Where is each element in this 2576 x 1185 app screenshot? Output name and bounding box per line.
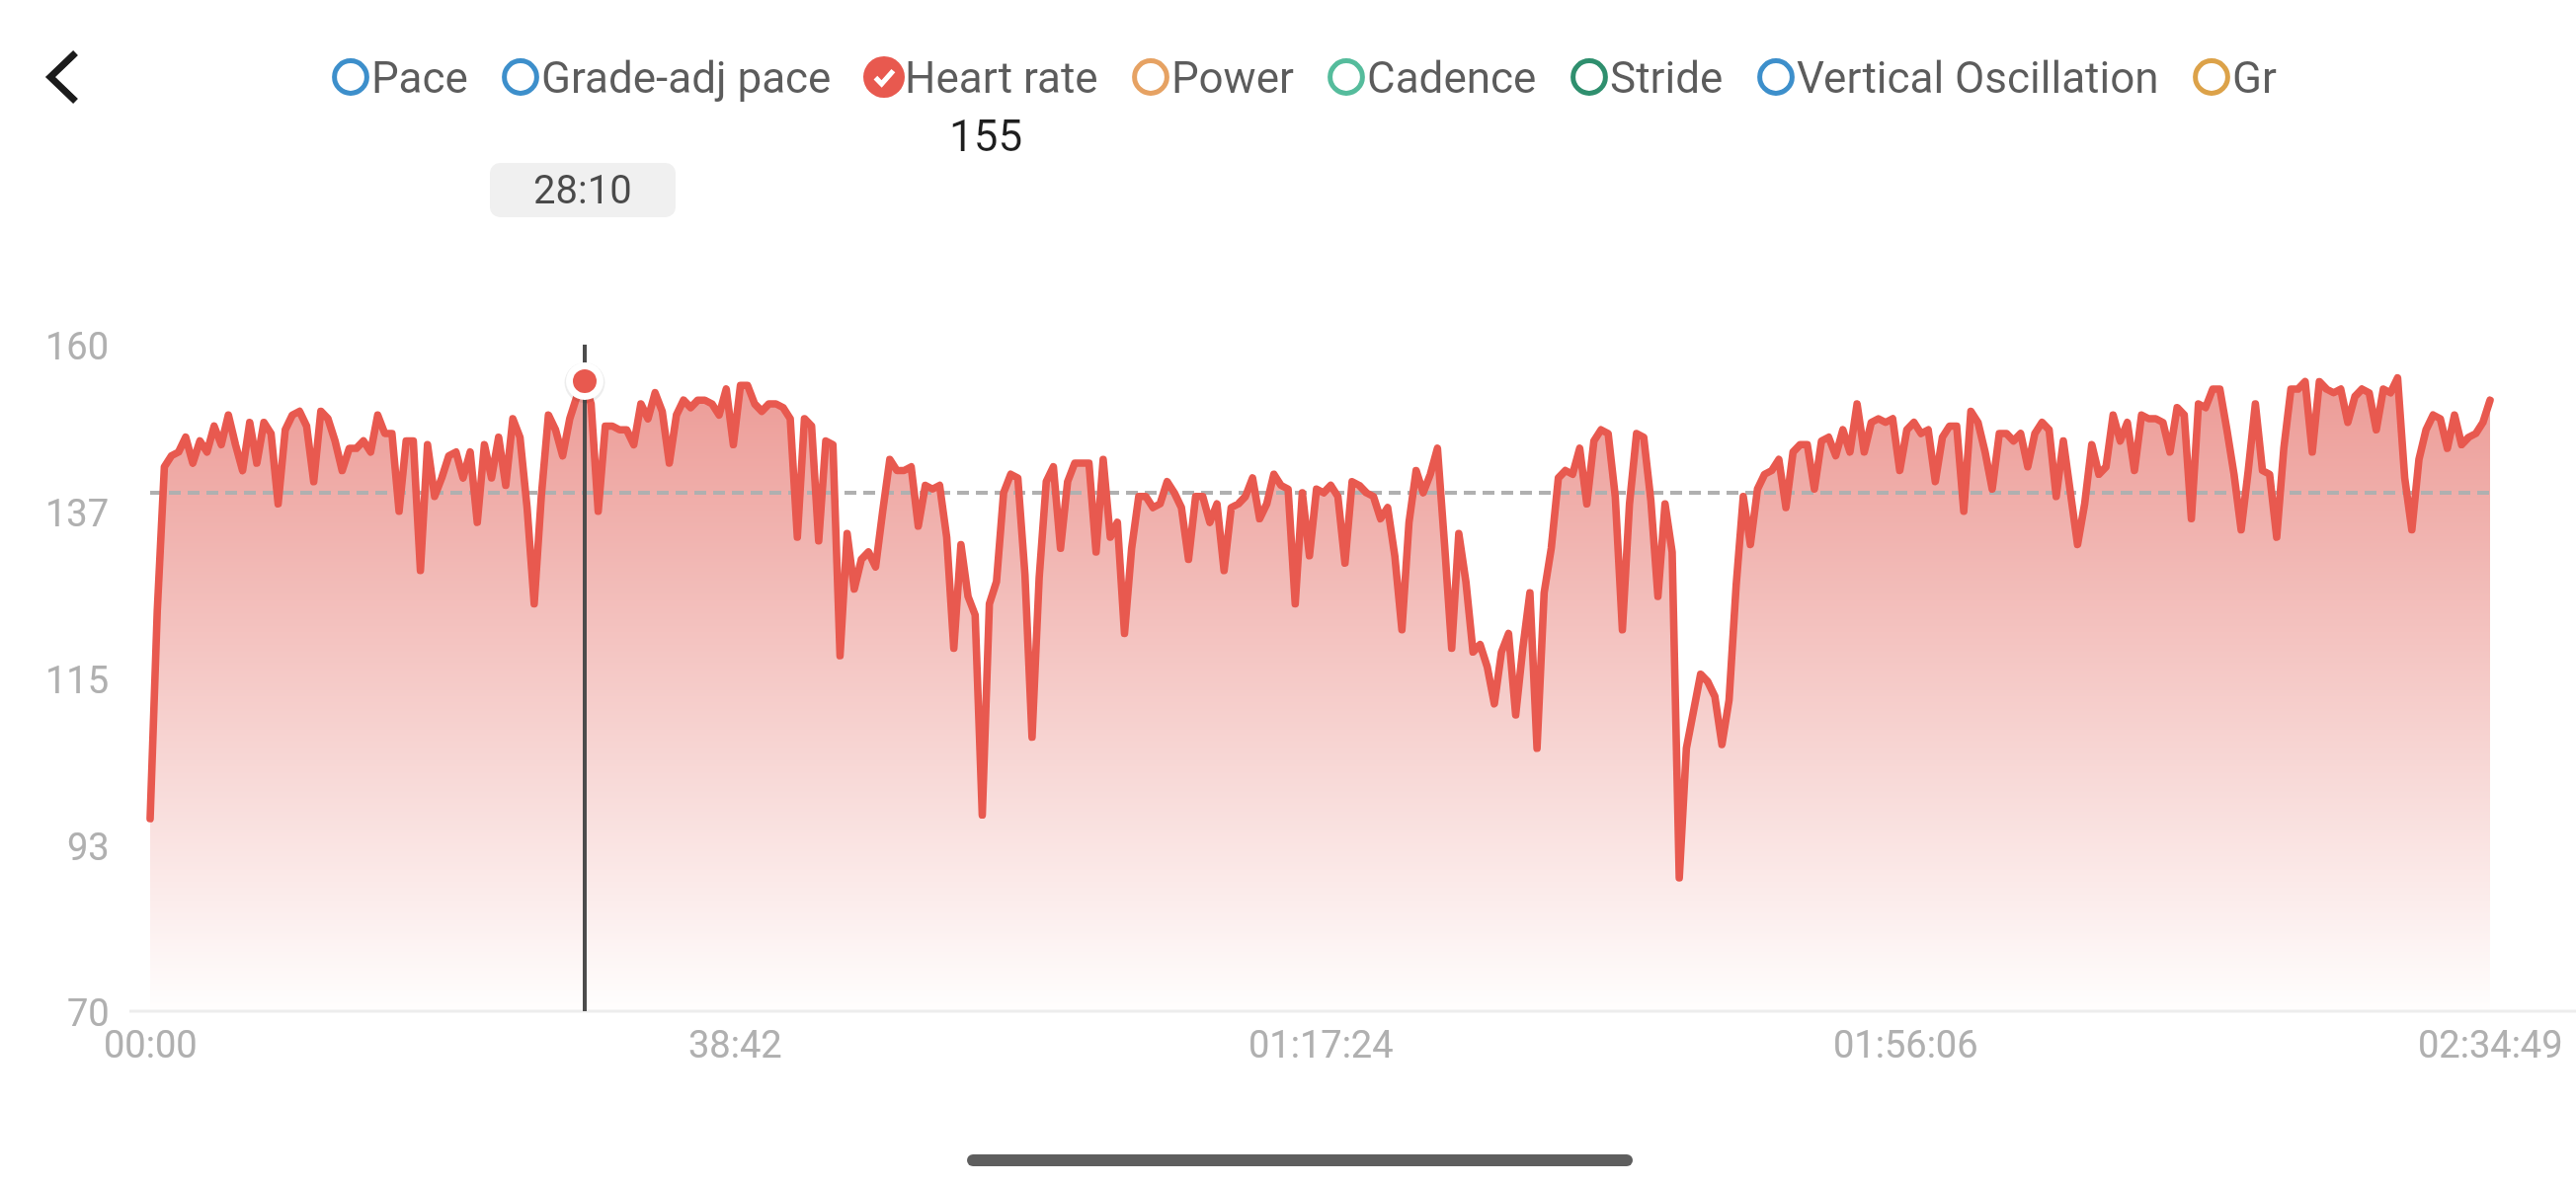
button[interactable]: Power <box>1132 52 1294 104</box>
button[interactable]: 28:10 <box>490 163 676 217</box>
staticText: 28:10 <box>533 167 632 213</box>
staticText: Heart rate <box>905 52 1098 104</box>
button[interactable]: Pace <box>332 52 468 104</box>
staticText: Cadence <box>1367 52 1537 104</box>
button[interactable]: Vertical Oscillation <box>1757 52 2159 104</box>
staticText: 160 <box>45 325 110 369</box>
staticText: Stride <box>1610 52 1724 104</box>
staticText: Ground contact time <box>2232 52 2280 104</box>
staticText: 70 <box>67 991 110 1036</box>
button[interactable]: Grade-adj pace <box>502 52 832 104</box>
staticText: 155 <box>949 111 1023 162</box>
button[interactable]: Cadence <box>1328 52 1537 104</box>
staticText: 137 <box>45 492 110 536</box>
staticText: Grade-adj pace <box>541 52 832 104</box>
button[interactable]: Stride <box>1570 52 1724 104</box>
staticText: Power <box>1171 52 1294 104</box>
staticText: 01:56:06 <box>1833 1023 1978 1067</box>
button[interactable]: Ground contact time <box>2193 52 2280 104</box>
staticText: Vertical Oscillation <box>1797 52 2159 104</box>
staticText: 38:42 <box>688 1023 782 1067</box>
staticText: 115 <box>45 659 110 703</box>
staticText: 00:00 <box>104 1023 198 1067</box>
button[interactable]: Back <box>18 32 109 122</box>
button[interactable]: Heart rate <box>865 52 1098 104</box>
staticText: 01:17:24 <box>1248 1023 1394 1067</box>
staticText: Pace <box>371 52 468 104</box>
staticText: 93 <box>67 826 110 870</box>
staticText: 02:34:49 <box>2418 1023 2563 1067</box>
